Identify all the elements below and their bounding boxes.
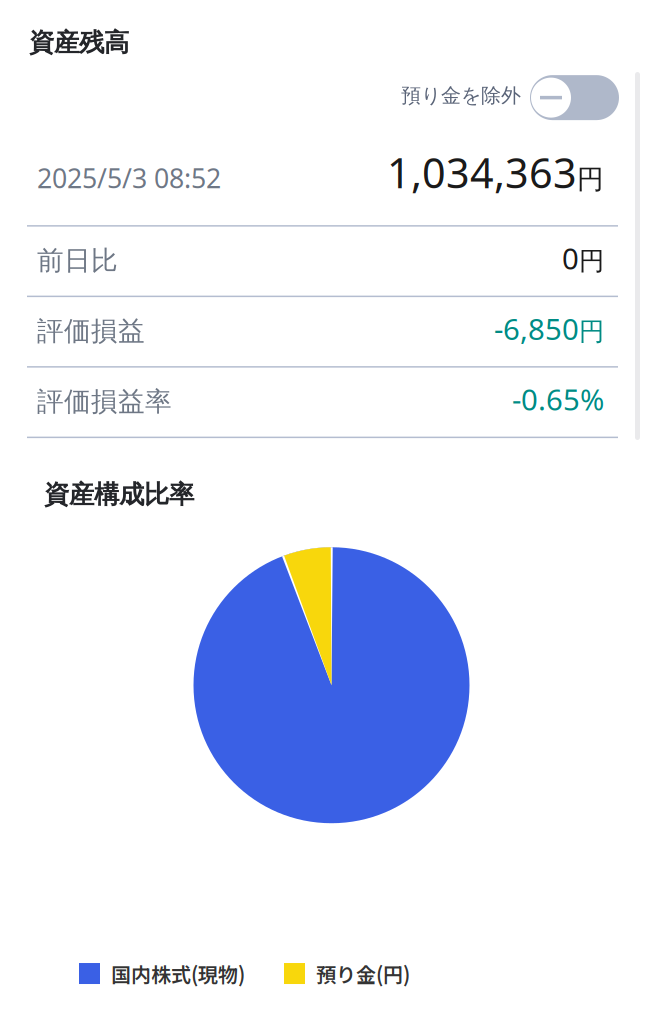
staticText: 円 xyxy=(579,316,604,347)
staticText: 2025/5/3 08:52 xyxy=(37,160,221,195)
staticText: -6,850 xyxy=(494,309,579,348)
staticText: 評価損益 xyxy=(37,315,145,347)
staticText: -0.65% xyxy=(512,380,604,419)
staticText: 資産構成比率 xyxy=(44,479,194,510)
button[interactable]: 預り金を除外 xyxy=(401,75,619,120)
staticText: 資産残高 xyxy=(29,27,129,58)
staticText: 1,034,363 xyxy=(387,145,577,200)
staticText: 国内株式(現物) xyxy=(111,959,245,988)
staticText: 前日比 xyxy=(37,244,118,277)
staticText: 円 xyxy=(579,245,604,277)
staticText: 預り金(円) xyxy=(316,959,410,988)
staticText: 預り金を除外 xyxy=(401,83,521,108)
staticText: 円 xyxy=(577,163,604,196)
staticText: 0 xyxy=(562,239,579,278)
staticText: 評価損益率 xyxy=(37,385,172,418)
